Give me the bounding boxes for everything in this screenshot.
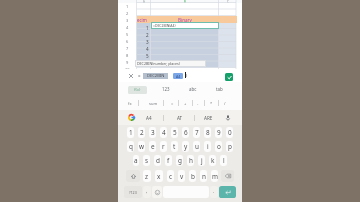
staticText: w: [139, 142, 145, 151]
button[interactable]: 7: [193, 127, 200, 138]
button[interactable]: Google Search: [128, 114, 135, 121]
button[interactable]: o: [215, 141, 222, 152]
button[interactable]: 5: [171, 127, 178, 138]
button[interactable]: A4: [138, 110, 160, 125]
button[interactable]: Enter: [219, 186, 236, 198]
button[interactable]: 1: [127, 127, 134, 138]
button[interactable]: d: [154, 155, 161, 166]
staticText: 6: [184, 128, 188, 137]
button[interactable]: h: [187, 155, 194, 166]
button[interactable]: l: [220, 155, 227, 166]
button[interactable]: abc: [182, 82, 204, 96]
staticText: =: [171, 101, 174, 106]
button[interactable]: tab: [208, 82, 230, 96]
staticText: m: [212, 172, 218, 181]
staticText: ARE: [204, 115, 213, 121]
staticText: a: [134, 156, 138, 165]
button[interactable]: sum: [146, 96, 160, 110]
staticText: 8: [206, 128, 210, 137]
staticText: p: [228, 142, 232, 151]
button[interactable]: /: [218, 96, 232, 110]
button[interactable]: s: [143, 155, 150, 166]
button[interactable]: z: [143, 170, 151, 182]
button[interactable]: u: [193, 141, 200, 152]
button[interactable]: ?123: [124, 186, 142, 198]
button[interactable]: 4: [160, 127, 167, 138]
button[interactable]: e: [149, 141, 156, 152]
button[interactable]: q: [127, 141, 134, 152]
button[interactable]: -: [191, 96, 205, 110]
staticText: j: [201, 156, 203, 165]
staticText: f(x): [134, 87, 141, 93]
button[interactable]: y: [182, 141, 189, 152]
button[interactable]: n: [200, 170, 207, 182]
button[interactable]: AT: [169, 110, 191, 125]
staticText: 5: [146, 53, 149, 59]
button[interactable]: ARE: [197, 110, 219, 125]
button[interactable]: 8: [204, 127, 211, 138]
staticText: 3: [151, 128, 155, 137]
staticText: *: [210, 101, 213, 106]
staticText: ecim: [137, 17, 147, 23]
button[interactable]: 3: [149, 127, 156, 138]
button[interactable]: 9: [215, 127, 222, 138]
button[interactable]: Confirm: [225, 73, 233, 81]
button[interactable]: Voice input: [221, 110, 234, 125]
button[interactable]: b: [189, 170, 196, 182]
staticText: z: [145, 172, 149, 181]
staticText: f: [167, 156, 170, 165]
staticText: 4: [162, 128, 166, 137]
staticText: o: [217, 142, 221, 151]
button[interactable]: =: [165, 96, 179, 110]
staticText: 9: [217, 128, 221, 137]
button[interactable]: m: [211, 170, 218, 182]
staticText: 7: [195, 128, 199, 137]
button[interactable]: k: [209, 155, 216, 166]
button[interactable]: Cancel: [126, 71, 135, 80]
button[interactable]: f: [165, 155, 172, 166]
staticText: 3: [126, 18, 129, 23]
staticText: 6: [126, 39, 129, 44]
staticText: 0: [228, 128, 232, 137]
button[interactable]: c: [167, 170, 174, 182]
button[interactable]: Backspace: [221, 170, 234, 182]
button[interactable]: g: [176, 155, 183, 166]
button[interactable]: +: [178, 96, 192, 110]
staticText: 3: [146, 39, 149, 45]
button[interactable]: 6: [182, 127, 189, 138]
staticText: c: [169, 172, 173, 181]
button[interactable]: fx: [123, 96, 137, 110]
button[interactable]: r: [160, 141, 167, 152]
staticText: 1: [129, 128, 133, 137]
staticText: 5: [173, 128, 177, 137]
button[interactable]: 123: [155, 82, 177, 96]
staticText: B: [184, 0, 186, 3]
button[interactable]: 2: [138, 127, 145, 138]
button[interactable]: w: [138, 141, 145, 152]
button[interactable]: v: [178, 170, 185, 182]
staticText: fx: [128, 101, 132, 106]
staticText: 1: [126, 4, 129, 9]
staticText: 2: [126, 11, 129, 16]
button[interactable]: p: [226, 141, 233, 152]
staticText: g: [178, 156, 182, 165]
button[interactable]: Emoji: [152, 186, 162, 198]
button[interactable]: *: [204, 96, 218, 110]
staticText: 2: [140, 128, 144, 137]
staticText: AT: [177, 115, 183, 121]
button[interactable]: i: [204, 141, 211, 152]
button[interactable]: f(x): [128, 86, 147, 94]
staticText: DEC2BIN(number, places): [137, 61, 180, 66]
button[interactable]: a: [133, 155, 139, 166]
staticText: A: [143, 0, 145, 3]
button[interactable]: j: [198, 155, 205, 166]
staticText: ,: [146, 188, 148, 194]
button[interactable]: Shift: [126, 170, 140, 182]
staticText: i: [207, 142, 209, 151]
button[interactable]: .: [210, 186, 218, 198]
button[interactable]: t: [171, 141, 178, 152]
button[interactable]: x: [155, 170, 163, 182]
button[interactable]: 0: [226, 127, 233, 138]
button[interactable]: ,: [143, 186, 151, 198]
